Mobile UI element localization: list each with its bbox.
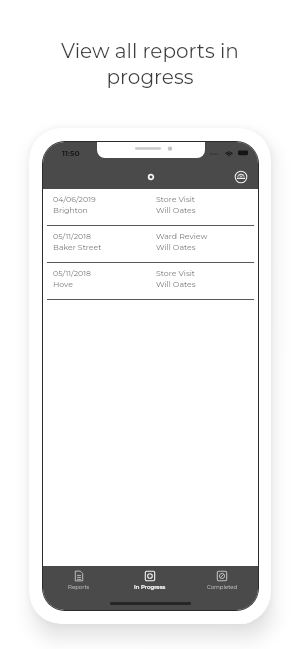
button[interactable]: In Progress	[114, 566, 186, 610]
staticText: Will Oates	[156, 279, 196, 289]
staticText: Baker Street	[53, 242, 102, 252]
staticText: 11:50	[62, 149, 80, 158]
staticText: Store Visit	[156, 268, 195, 278]
button[interactable]: Reports	[43, 566, 114, 610]
staticText: Will Oates	[156, 242, 196, 252]
staticText: 04/06/2019	[53, 194, 96, 204]
button[interactable]: 05/11/2018	[43, 226, 258, 263]
staticText: View all reports in progress	[61, 39, 239, 89]
staticText: Completed	[207, 584, 238, 591]
button[interactable]: 04/06/2019	[43, 189, 258, 226]
staticText: 05/11/2018	[53, 231, 92, 241]
staticText: Will Oates	[156, 205, 196, 215]
staticText: Hove	[53, 279, 73, 289]
button[interactable]: Account	[232, 168, 250, 186]
button[interactable]: 05/11/2018	[43, 263, 258, 300]
staticText: 05/11/2018	[53, 268, 92, 278]
button[interactable]: Completed	[186, 566, 258, 610]
staticText: Store Visit	[156, 194, 195, 204]
button[interactable]: Home	[144, 170, 158, 184]
staticText: Reports	[68, 584, 90, 591]
staticText: Brighton	[53, 205, 88, 215]
staticText: Ward Review	[156, 231, 208, 241]
staticText: In Progress	[134, 584, 166, 591]
